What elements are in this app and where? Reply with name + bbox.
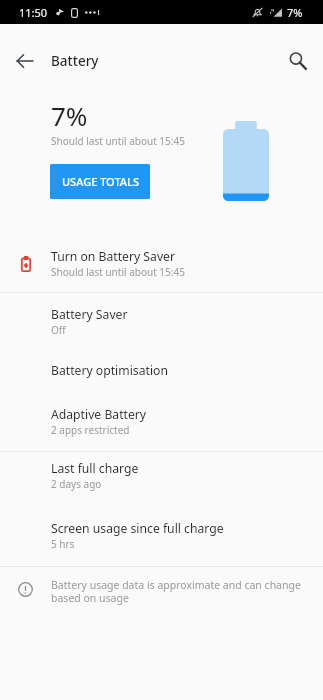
staticText: Should last until about 15:45 xyxy=(51,134,185,148)
staticText: Screen usage since full charge xyxy=(51,520,224,537)
staticText: 2 apps restricted xyxy=(51,423,130,437)
button[interactable]: Last full charge xyxy=(0,452,323,509)
staticText: Battery usage data is approximate and ca… xyxy=(51,578,301,605)
button[interactable]: Search xyxy=(278,41,318,81)
staticText: USAGE TOTALS xyxy=(62,174,139,189)
staticText: Battery optimisation xyxy=(51,362,168,379)
button[interactable]: Battery optimisation xyxy=(0,345,323,389)
staticText: Battery Saver xyxy=(51,306,128,323)
staticText: 2 days ago xyxy=(51,477,102,491)
button[interactable]: Adaptive Battery xyxy=(0,389,323,451)
staticText: 7% xyxy=(51,98,88,133)
button[interactable]: USAGE TOTALS xyxy=(50,164,150,199)
staticText: Last full charge xyxy=(51,460,139,477)
other: Battery level xyxy=(223,121,269,201)
button[interactable]: Back xyxy=(5,41,45,81)
staticText: 7% xyxy=(287,5,303,20)
button[interactable]: Battery Saver xyxy=(0,293,323,345)
staticText: Adaptive Battery xyxy=(51,406,147,423)
staticText: Should last until about 15:45 xyxy=(51,265,185,279)
staticText: Turn on Battery Saver xyxy=(51,248,175,265)
staticText: 11:50 xyxy=(19,5,48,20)
button[interactable]: Screen usage since full charge xyxy=(0,509,323,566)
staticText: Off xyxy=(51,323,66,337)
staticText: 5 hrs xyxy=(51,537,75,551)
button[interactable]: Turn on Battery Saver xyxy=(0,226,323,292)
staticText: Battery xyxy=(51,52,99,70)
